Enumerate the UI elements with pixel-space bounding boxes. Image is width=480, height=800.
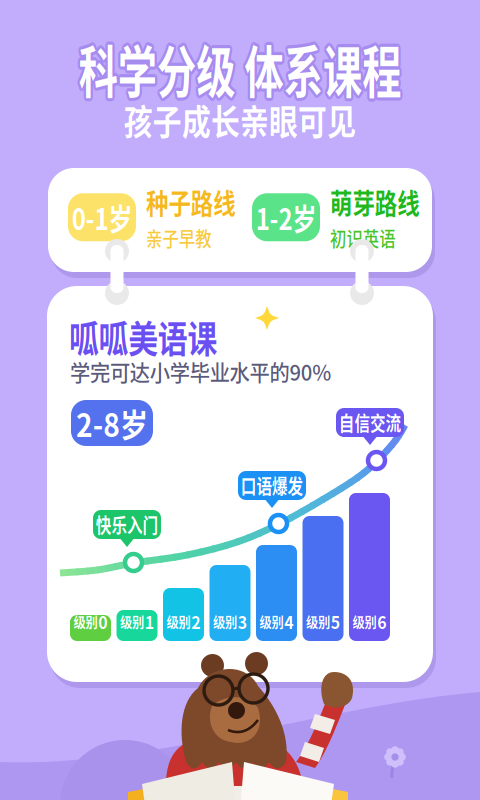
- staticText: 6: [378, 609, 388, 634]
- staticText: 萌芽路线: [330, 182, 442, 222]
- staticText: 级别: [72, 612, 98, 631]
- staticText: 科学分级 体系课程: [8, 25, 469, 106]
- staticText: 5: [331, 609, 341, 634]
- staticText: 1: [145, 609, 155, 634]
- staticText: 4: [285, 609, 295, 634]
- staticText: 2: [192, 609, 202, 634]
- staticText: 科学分级 体系课程: [9, 27, 470, 109]
- staticText: 亲子早教: [146, 223, 226, 252]
- staticText: 科学分级 体系课程: [11, 30, 472, 111]
- staticText: 科学分级 体系课程: [11, 25, 472, 106]
- staticText: 科学分级 体系课程: [12, 26, 473, 107]
- staticText: 3: [238, 609, 248, 634]
- staticText: 科学分级 体系课程: [8, 30, 469, 111]
- staticText: 2-8岁: [71, 400, 153, 446]
- staticText: 自信交流: [330, 408, 410, 437]
- staticText: 快乐入门: [87, 510, 167, 539]
- staticText: 科学分级 体系课程: [6, 27, 467, 109]
- staticText: 级别: [258, 612, 284, 631]
- staticText: 学完可达小学毕业水平的90%: [70, 356, 345, 387]
- staticText: 0: [99, 609, 109, 634]
- staticText: 1-2岁: [249, 196, 323, 238]
- staticText: 级别: [351, 612, 377, 631]
- staticText: 种子路线: [146, 182, 258, 222]
- staticText: 口语爆发: [232, 471, 312, 500]
- staticText: 初识英语: [330, 223, 410, 252]
- staticText: 科学分级 体系课程: [9, 24, 470, 105]
- staticText: 呱呱美语课: [69, 310, 254, 364]
- staticText: 级别: [165, 612, 191, 631]
- staticText: 科学分级 体系课程: [7, 29, 468, 110]
- staticText: 孩子成长亲眼可见: [100, 95, 380, 145]
- staticText: 级别: [118, 612, 144, 631]
- staticText: 科学分级 体系课程: [13, 27, 474, 109]
- staticText: 0-1岁: [65, 196, 139, 238]
- staticText: 级别: [211, 612, 237, 631]
- staticText: 科学分级 体系课程: [7, 26, 468, 107]
- staticText: 级别: [304, 612, 330, 631]
- staticText: 科学分级 体系课程: [12, 29, 473, 110]
- staticText: 科学分级 体系课程: [9, 31, 470, 112]
